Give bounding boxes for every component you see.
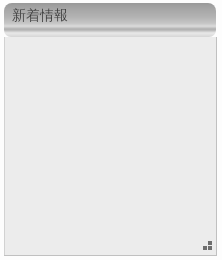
button[interactable]: Resize xyxy=(200,238,216,254)
button[interactable]: 新着情報リスト xyxy=(4,37,217,256)
staticText: 新着情報 xyxy=(12,7,68,25)
button[interactable]: 新着情報 xyxy=(4,3,216,37)
